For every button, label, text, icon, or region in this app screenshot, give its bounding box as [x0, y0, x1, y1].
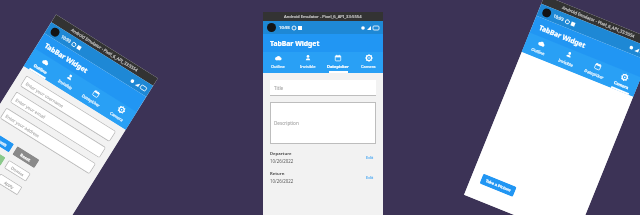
staticText: Submit [0, 136, 8, 148]
button[interactable]: Outline [263, 52, 293, 73]
staticText: Enter your username [25, 81, 65, 109]
staticText: Android Emulator - Pixel_6_API_33:5554 [561, 5, 636, 40]
button[interactable]: Take a Picture [479, 173, 517, 197]
staticText: Enter your address [4, 113, 42, 139]
staticText: TabBar Widget [270, 39, 320, 48]
button[interactable]: Return [270, 171, 376, 184]
staticText: Camera [613, 80, 630, 90]
button[interactable]: Submit [0, 130, 14, 152]
button[interactable]: Departure [270, 151, 376, 164]
staticText: Datepicker [81, 93, 101, 108]
staticText: 10:93 [552, 13, 565, 23]
button[interactable]: Enter your address [0, 107, 96, 174]
button[interactable]: Camera [353, 52, 383, 73]
staticText: Camera [109, 111, 124, 123]
button[interactable]: Description [270, 102, 376, 144]
button[interactable]: Accept [0, 144, 6, 166]
staticText: Datepicker [584, 68, 605, 80]
button[interactable]: Invisible [550, 44, 585, 74]
button[interactable]: Reset [12, 146, 39, 168]
staticText: Edit [366, 175, 374, 180]
staticText: 10/26/2022 [270, 178, 294, 184]
button[interactable]: Edit [364, 153, 376, 162]
staticText: Apply [3, 180, 15, 190]
staticText: Enter your email [14, 97, 47, 120]
staticText: Invisible [558, 57, 574, 68]
button[interactable]: Invisible [293, 52, 323, 73]
staticText: Android Emulator - Pixel_6_API_33:5554 [284, 14, 362, 20]
staticText: Description [274, 120, 299, 126]
staticText: Departure [270, 151, 292, 157]
staticText: Title [274, 85, 284, 91]
button[interactable]: Datepicker [323, 52, 353, 73]
staticText: Edit [366, 155, 374, 160]
staticText: 10:93 [60, 34, 72, 45]
button[interactable]: Outline [522, 32, 557, 63]
staticText: Return [270, 171, 285, 177]
staticText: Camera [361, 64, 376, 69]
button[interactable]: Outline [24, 48, 60, 82]
button[interactable]: Dismiss [4, 160, 31, 182]
button[interactable]: Datepicker [75, 80, 111, 114]
staticText: TabBar Widget [43, 41, 90, 75]
staticText: Android Emulator - Pixel_6_API_33:5554 [70, 27, 139, 74]
staticText: 10/26/2022 [270, 158, 294, 164]
staticText: Outline [33, 63, 48, 75]
button[interactable]: Invisible [49, 64, 86, 98]
button[interactable]: Enter your username [20, 75, 116, 142]
button[interactable]: Datepicker [577, 55, 613, 86]
staticText: Take a Picture [485, 178, 512, 193]
staticText: 10:93 [279, 25, 290, 31]
staticText: Invisible [57, 78, 73, 91]
button[interactable]: Camera [605, 66, 640, 97]
button[interactable]: Title [270, 80, 376, 95]
button[interactable]: Enter your email [10, 91, 106, 158]
staticText: Datepicker [327, 64, 349, 69]
staticText: Dismiss [10, 165, 25, 178]
button[interactable]: Edit [364, 173, 376, 182]
staticText: Reset [19, 152, 32, 163]
button[interactable]: Apply [0, 173, 23, 195]
button[interactable]: Camera [100, 96, 137, 130]
staticText: Outline [531, 47, 546, 56]
staticText: TabBar Widget [538, 23, 587, 50]
staticText: Invisible [300, 64, 316, 69]
staticText: Outline [271, 64, 285, 69]
